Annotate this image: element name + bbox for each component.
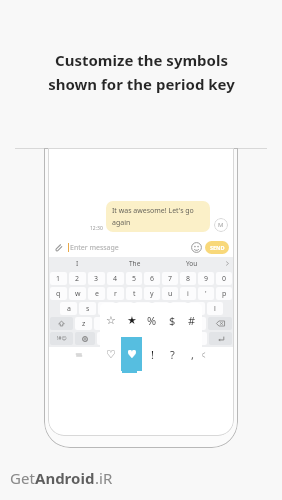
staticText: ★	[127, 314, 137, 327]
staticText: q	[56, 289, 61, 299]
button[interactable]: 3	[88, 272, 105, 285]
staticText: .iR	[95, 468, 113, 488]
staticText: The	[129, 259, 141, 268]
staticText: M	[218, 221, 224, 229]
button[interactable]: a	[60, 302, 77, 315]
staticText: 7	[168, 274, 173, 284]
staticText: 6	[150, 274, 155, 284]
staticText: p	[222, 289, 227, 299]
button[interactable]: Attach	[53, 242, 64, 253]
staticText: i	[187, 289, 189, 299]
button[interactable]: i	[180, 287, 196, 300]
staticText: y	[150, 289, 154, 299]
staticText: s	[86, 304, 90, 314]
button[interactable]: !#☺	[50, 332, 73, 345]
button[interactable]: I	[48, 257, 106, 270]
staticText: e	[95, 289, 99, 299]
button[interactable]: 4	[107, 272, 124, 285]
button[interactable]: z	[75, 317, 92, 330]
button[interactable]: Enter	[209, 332, 232, 345]
button[interactable]: ♥	[121, 337, 142, 371]
button[interactable]: 7	[162, 272, 178, 285]
button[interactable]: Back	[172, 347, 234, 363]
button[interactable]: More suggestions	[220, 257, 234, 270]
button[interactable]: ☆	[100, 303, 121, 337]
button[interactable]: 6	[144, 272, 160, 285]
button[interactable]: u	[162, 287, 178, 300]
staticText: '	[205, 289, 207, 299]
staticText: u	[168, 289, 173, 299]
staticText: $	[169, 313, 176, 328]
button[interactable]: v	[132, 317, 149, 330]
staticText: 8	[186, 274, 191, 284]
button[interactable]: q	[50, 287, 67, 300]
staticText: w	[75, 289, 81, 299]
button[interactable]: Shift	[50, 317, 73, 330]
button[interactable]: m	[189, 317, 206, 330]
button[interactable]: $	[162, 303, 182, 337]
button[interactable]: t	[126, 287, 142, 300]
button[interactable]: 1	[50, 272, 67, 285]
button[interactable]: It was awesome! Let's go again	[106, 201, 210, 232]
button[interactable]: ,	[182, 337, 202, 371]
staticText: ?	[170, 347, 175, 362]
staticText: z	[82, 319, 86, 329]
staticText: shown for the period key	[48, 74, 235, 94]
staticText: Get	[10, 468, 35, 488]
button[interactable]: Home	[110, 347, 172, 363]
button[interactable]: 5	[126, 272, 142, 285]
staticText: 12:30	[90, 225, 103, 232]
staticText: It was awesome! Let's go again	[112, 206, 204, 227]
button[interactable]: n	[170, 317, 187, 330]
staticText: ♡	[106, 348, 116, 361]
staticText: a	[67, 304, 71, 314]
button[interactable]: p	[216, 287, 232, 300]
staticText: Enter message	[70, 243, 119, 253]
staticText: I	[76, 259, 79, 268]
staticText: ‹ English(US) ›	[125, 335, 158, 342]
button[interactable]: l	[207, 302, 223, 315]
button[interactable]: Settings	[75, 332, 95, 345]
button[interactable]: Recents	[48, 347, 110, 363]
button[interactable]: b	[151, 317, 168, 330]
button[interactable]: The	[106, 257, 163, 270]
button[interactable]: ★	[121, 303, 142, 337]
button[interactable]: You	[163, 257, 220, 270]
button[interactable]: w	[69, 287, 86, 300]
button[interactable]: Backspace	[208, 317, 232, 330]
button[interactable]: Space	[97, 332, 185, 345]
staticText: ,	[191, 347, 194, 362]
button[interactable]: s	[79, 302, 96, 315]
button[interactable]: y	[144, 287, 160, 300]
button[interactable]: !	[142, 337, 162, 371]
button[interactable]: c	[113, 317, 130, 330]
button[interactable]: 8	[180, 272, 196, 285]
button[interactable]: 9	[198, 272, 214, 285]
staticText: 0	[222, 274, 227, 284]
button[interactable]: e	[88, 287, 105, 300]
button[interactable]: SEND	[205, 241, 229, 254]
button[interactable]: #	[182, 303, 202, 337]
button[interactable]: '	[198, 287, 214, 300]
button[interactable]: ?	[162, 337, 182, 371]
button[interactable]: 0	[216, 272, 232, 285]
staticText: 3	[94, 274, 99, 284]
button[interactable]: 2	[69, 272, 86, 285]
button[interactable]: r	[107, 287, 124, 300]
button[interactable]: x	[94, 317, 111, 330]
button[interactable]: %	[142, 303, 162, 337]
button[interactable]: ♡	[100, 337, 121, 371]
button[interactable]: Emoji	[191, 242, 202, 253]
